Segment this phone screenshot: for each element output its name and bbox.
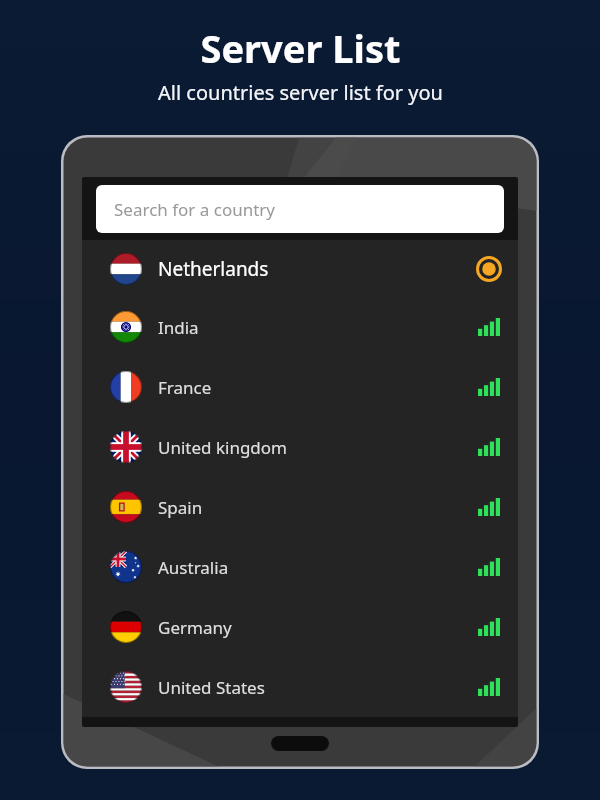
staticText: Server List [200, 22, 401, 74]
staticText: Search for a country [114, 198, 276, 221]
button[interactable]: Signal strength [472, 670, 506, 704]
staticText: India [158, 316, 199, 339]
button[interactable]: Spain [82, 477, 518, 537]
button[interactable]: Signal strength [472, 430, 506, 464]
button[interactable]: Search for a country [96, 185, 504, 233]
staticText: Netherlands [158, 256, 269, 282]
button[interactable]: Australia [82, 537, 518, 597]
button[interactable]: United States [82, 657, 518, 717]
button[interactable]: France [82, 357, 518, 417]
button[interactable]: Signal strength [472, 550, 506, 584]
staticText: United States [158, 676, 265, 699]
staticText: Germany [158, 616, 232, 639]
button[interactable]: Signal strength [472, 310, 506, 344]
staticText: Australia [158, 556, 229, 579]
button[interactable]: Home [271, 736, 329, 751]
button[interactable]: Signal strength [472, 490, 506, 524]
staticText: France [158, 376, 212, 399]
staticText: All countries server list for you [158, 79, 443, 106]
staticText: United kingdom [158, 436, 287, 459]
button[interactable]: Signal strength [472, 370, 506, 404]
button[interactable]: Netherlands [82, 240, 518, 297]
button[interactable]: Germany [82, 597, 518, 657]
staticText: Spain [158, 496, 203, 519]
button[interactable]: Signal strength [472, 610, 506, 644]
button[interactable]: United kingdom [82, 417, 518, 477]
button[interactable]: Selected server [472, 252, 506, 286]
button[interactable]: India [82, 297, 518, 357]
